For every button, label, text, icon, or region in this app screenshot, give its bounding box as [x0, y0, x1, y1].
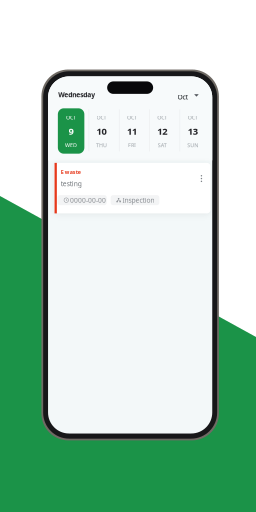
button[interactable]: E waste — [55, 163, 211, 213]
staticText: 12 — [157, 125, 167, 137]
staticText: testing — [61, 179, 82, 188]
staticText: Oct — [178, 93, 189, 101]
button[interactable]: OCT — [117, 108, 147, 154]
staticText: 11 — [127, 125, 137, 137]
staticText: OCT — [127, 114, 137, 121]
staticText: WED — [65, 141, 77, 149]
staticText: OCT — [188, 114, 198, 121]
staticText: 13 — [188, 125, 198, 137]
button[interactable]: OCT — [147, 108, 177, 154]
button[interactable]: Oct — [178, 91, 199, 103]
button[interactable]: OCT — [56, 108, 86, 154]
staticText: SUN — [187, 141, 198, 149]
staticText: Inspection — [122, 196, 154, 205]
staticText: E waste — [61, 168, 81, 176]
staticText: OCT — [96, 114, 106, 121]
staticText: 0000-00-00 — [70, 196, 106, 205]
button[interactable]: OCT — [177, 108, 208, 154]
staticText: 10 — [96, 125, 106, 137]
staticText: SAT — [158, 141, 167, 149]
staticText: FRI — [128, 141, 136, 149]
staticText: THU — [96, 141, 107, 149]
staticText: 9 — [69, 125, 74, 137]
staticText: OCT — [157, 114, 167, 121]
staticText: Wednesday — [58, 90, 95, 99]
staticText: OCT — [66, 114, 76, 121]
button[interactable]: More options — [197, 172, 206, 185]
button[interactable]: OCT — [86, 108, 117, 154]
